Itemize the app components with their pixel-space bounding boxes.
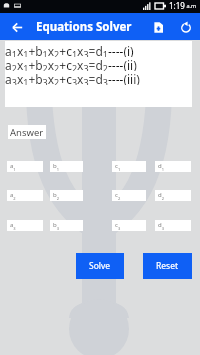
button[interactable]: Back — [0, 14, 34, 40]
staticText: b1 — [53, 162, 59, 172]
staticText: Answer — [10, 126, 44, 139]
staticText: Equations Solver — [36, 19, 132, 35]
staticText: c3 — [115, 221, 121, 231]
staticText: a1x1+b1x2+c1x3=d1----(i) — [5, 43, 134, 57]
button[interactable]: Solve — [76, 253, 124, 279]
staticText: Reset — [156, 260, 179, 272]
staticText: a1 — [10, 162, 16, 172]
staticText: b2 — [53, 191, 59, 201]
button[interactable]: New equation — [145, 14, 171, 40]
button[interactable]: d3 — [155, 220, 191, 231]
staticText: Solve — [89, 260, 111, 272]
button[interactable]: a1 — [7, 161, 43, 172]
staticText: d3 — [158, 221, 164, 231]
button[interactable]: c1 — [112, 161, 146, 172]
staticText: 1:19 — [169, 0, 185, 11]
staticText: c2 — [115, 191, 121, 201]
button[interactable]: Refresh — [173, 14, 199, 40]
staticText: a.m — [185, 2, 197, 9]
button[interactable]: d2 — [155, 190, 191, 201]
staticText: d1 — [158, 162, 164, 172]
button[interactable]: c3 — [112, 220, 146, 231]
staticText: a2x1+b2x2+c2x3=d2----(ii) — [5, 57, 137, 71]
staticText: b3 — [53, 221, 59, 231]
button[interactable]: b3 — [50, 220, 83, 231]
button[interactable]: c2 — [112, 190, 146, 201]
button[interactable]: d1 — [155, 161, 191, 172]
staticText: a3x1+b3x2+c3x3=d3----(iii) — [5, 71, 140, 85]
staticText: a2 — [10, 191, 16, 201]
button[interactable]: Reset — [143, 253, 192, 279]
button[interactable]: a2 — [7, 190, 43, 201]
button[interactable]: Answer — [8, 125, 46, 139]
staticText: c1 — [115, 162, 121, 172]
staticText: d2 — [158, 191, 164, 201]
button[interactable]: b1 — [50, 161, 83, 172]
staticText: a3 — [10, 221, 16, 231]
button[interactable]: a3 — [7, 220, 43, 231]
button[interactable]: b2 — [50, 190, 83, 201]
